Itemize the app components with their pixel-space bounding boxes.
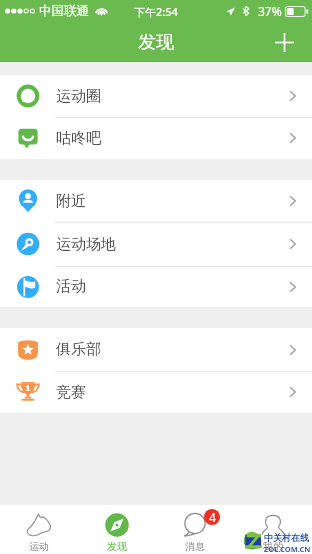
staticText: 4	[209, 509, 216, 525]
staticText: 运动	[29, 540, 49, 553]
staticText: 咕咚吧	[56, 129, 101, 148]
staticText: 俱乐部	[56, 340, 101, 359]
staticText: 附近	[56, 192, 86, 211]
staticText: 消息	[185, 540, 205, 553]
button[interactable]: 4	[156, 505, 234, 554]
staticText: 活动	[56, 277, 86, 296]
button[interactable]: 咕咚吧	[0, 117, 312, 159]
button[interactable]: 竞赛	[0, 371, 312, 413]
staticText: 我的	[263, 540, 283, 553]
staticText: 中关村在线	[264, 532, 309, 543]
staticText: 中国联通	[39, 3, 89, 19]
button[interactable]: 运动圈	[0, 75, 312, 117]
staticText: 下午2:54	[134, 4, 178, 19]
staticText: 37%	[258, 3, 282, 19]
button[interactable]: 发现	[78, 505, 156, 554]
button[interactable]: 运动	[0, 505, 78, 554]
staticText: ZOL.COM.CN	[264, 544, 311, 554]
button[interactable]: 运动场地	[0, 222, 312, 266]
button[interactable]: 附近	[0, 180, 312, 222]
staticText: 运动场地	[56, 235, 116, 254]
staticText: 发现	[138, 31, 174, 54]
staticText: 竞赛	[56, 383, 86, 402]
button[interactable]: 我的	[234, 505, 312, 554]
staticText: 发现	[107, 540, 127, 553]
button[interactable]: Add	[256, 22, 312, 62]
button[interactable]: 俱乐部	[0, 328, 312, 371]
staticText: 运动圈	[56, 87, 101, 106]
button[interactable]: 活动	[0, 266, 312, 307]
